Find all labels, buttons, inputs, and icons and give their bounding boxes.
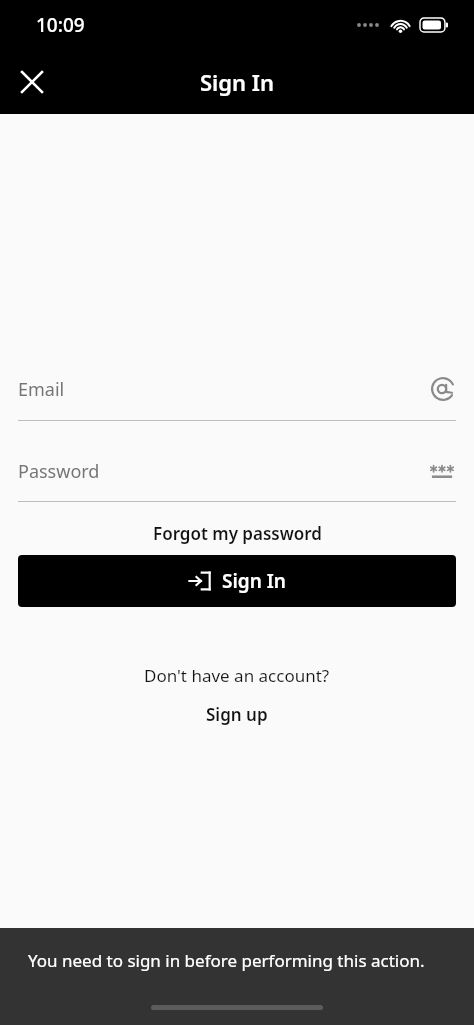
- staticText: Sign In: [222, 568, 286, 594]
- button[interactable]: Forgot my password: [18, 516, 456, 550]
- staticText: You need to sign in before performing th…: [28, 949, 425, 972]
- staticText: Password: [18, 459, 428, 484]
- staticText: Don't have an account?: [144, 664, 330, 687]
- button[interactable]: Sign up: [18, 698, 456, 730]
- staticText: 10:09: [36, 12, 85, 38]
- button[interactable]: Sign In: [18, 555, 456, 607]
- staticText: Sign up: [206, 703, 268, 726]
- staticText: Email: [18, 377, 430, 402]
- button[interactable]: Email: [18, 372, 456, 406]
- button[interactable]: Close: [10, 60, 54, 104]
- button[interactable]: Password: [18, 454, 456, 488]
- staticText: Forgot my password: [153, 522, 322, 545]
- staticText: Sign In: [200, 67, 275, 97]
